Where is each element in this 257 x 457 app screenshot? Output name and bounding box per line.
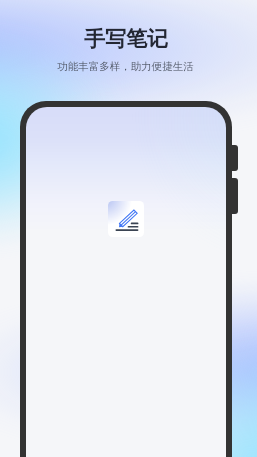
button[interactable]: Handwriting notes app	[108, 201, 144, 237]
staticText: 手写笔记	[84, 26, 168, 52]
staticText: 功能丰富多样，助力便捷生活	[57, 60, 194, 73]
